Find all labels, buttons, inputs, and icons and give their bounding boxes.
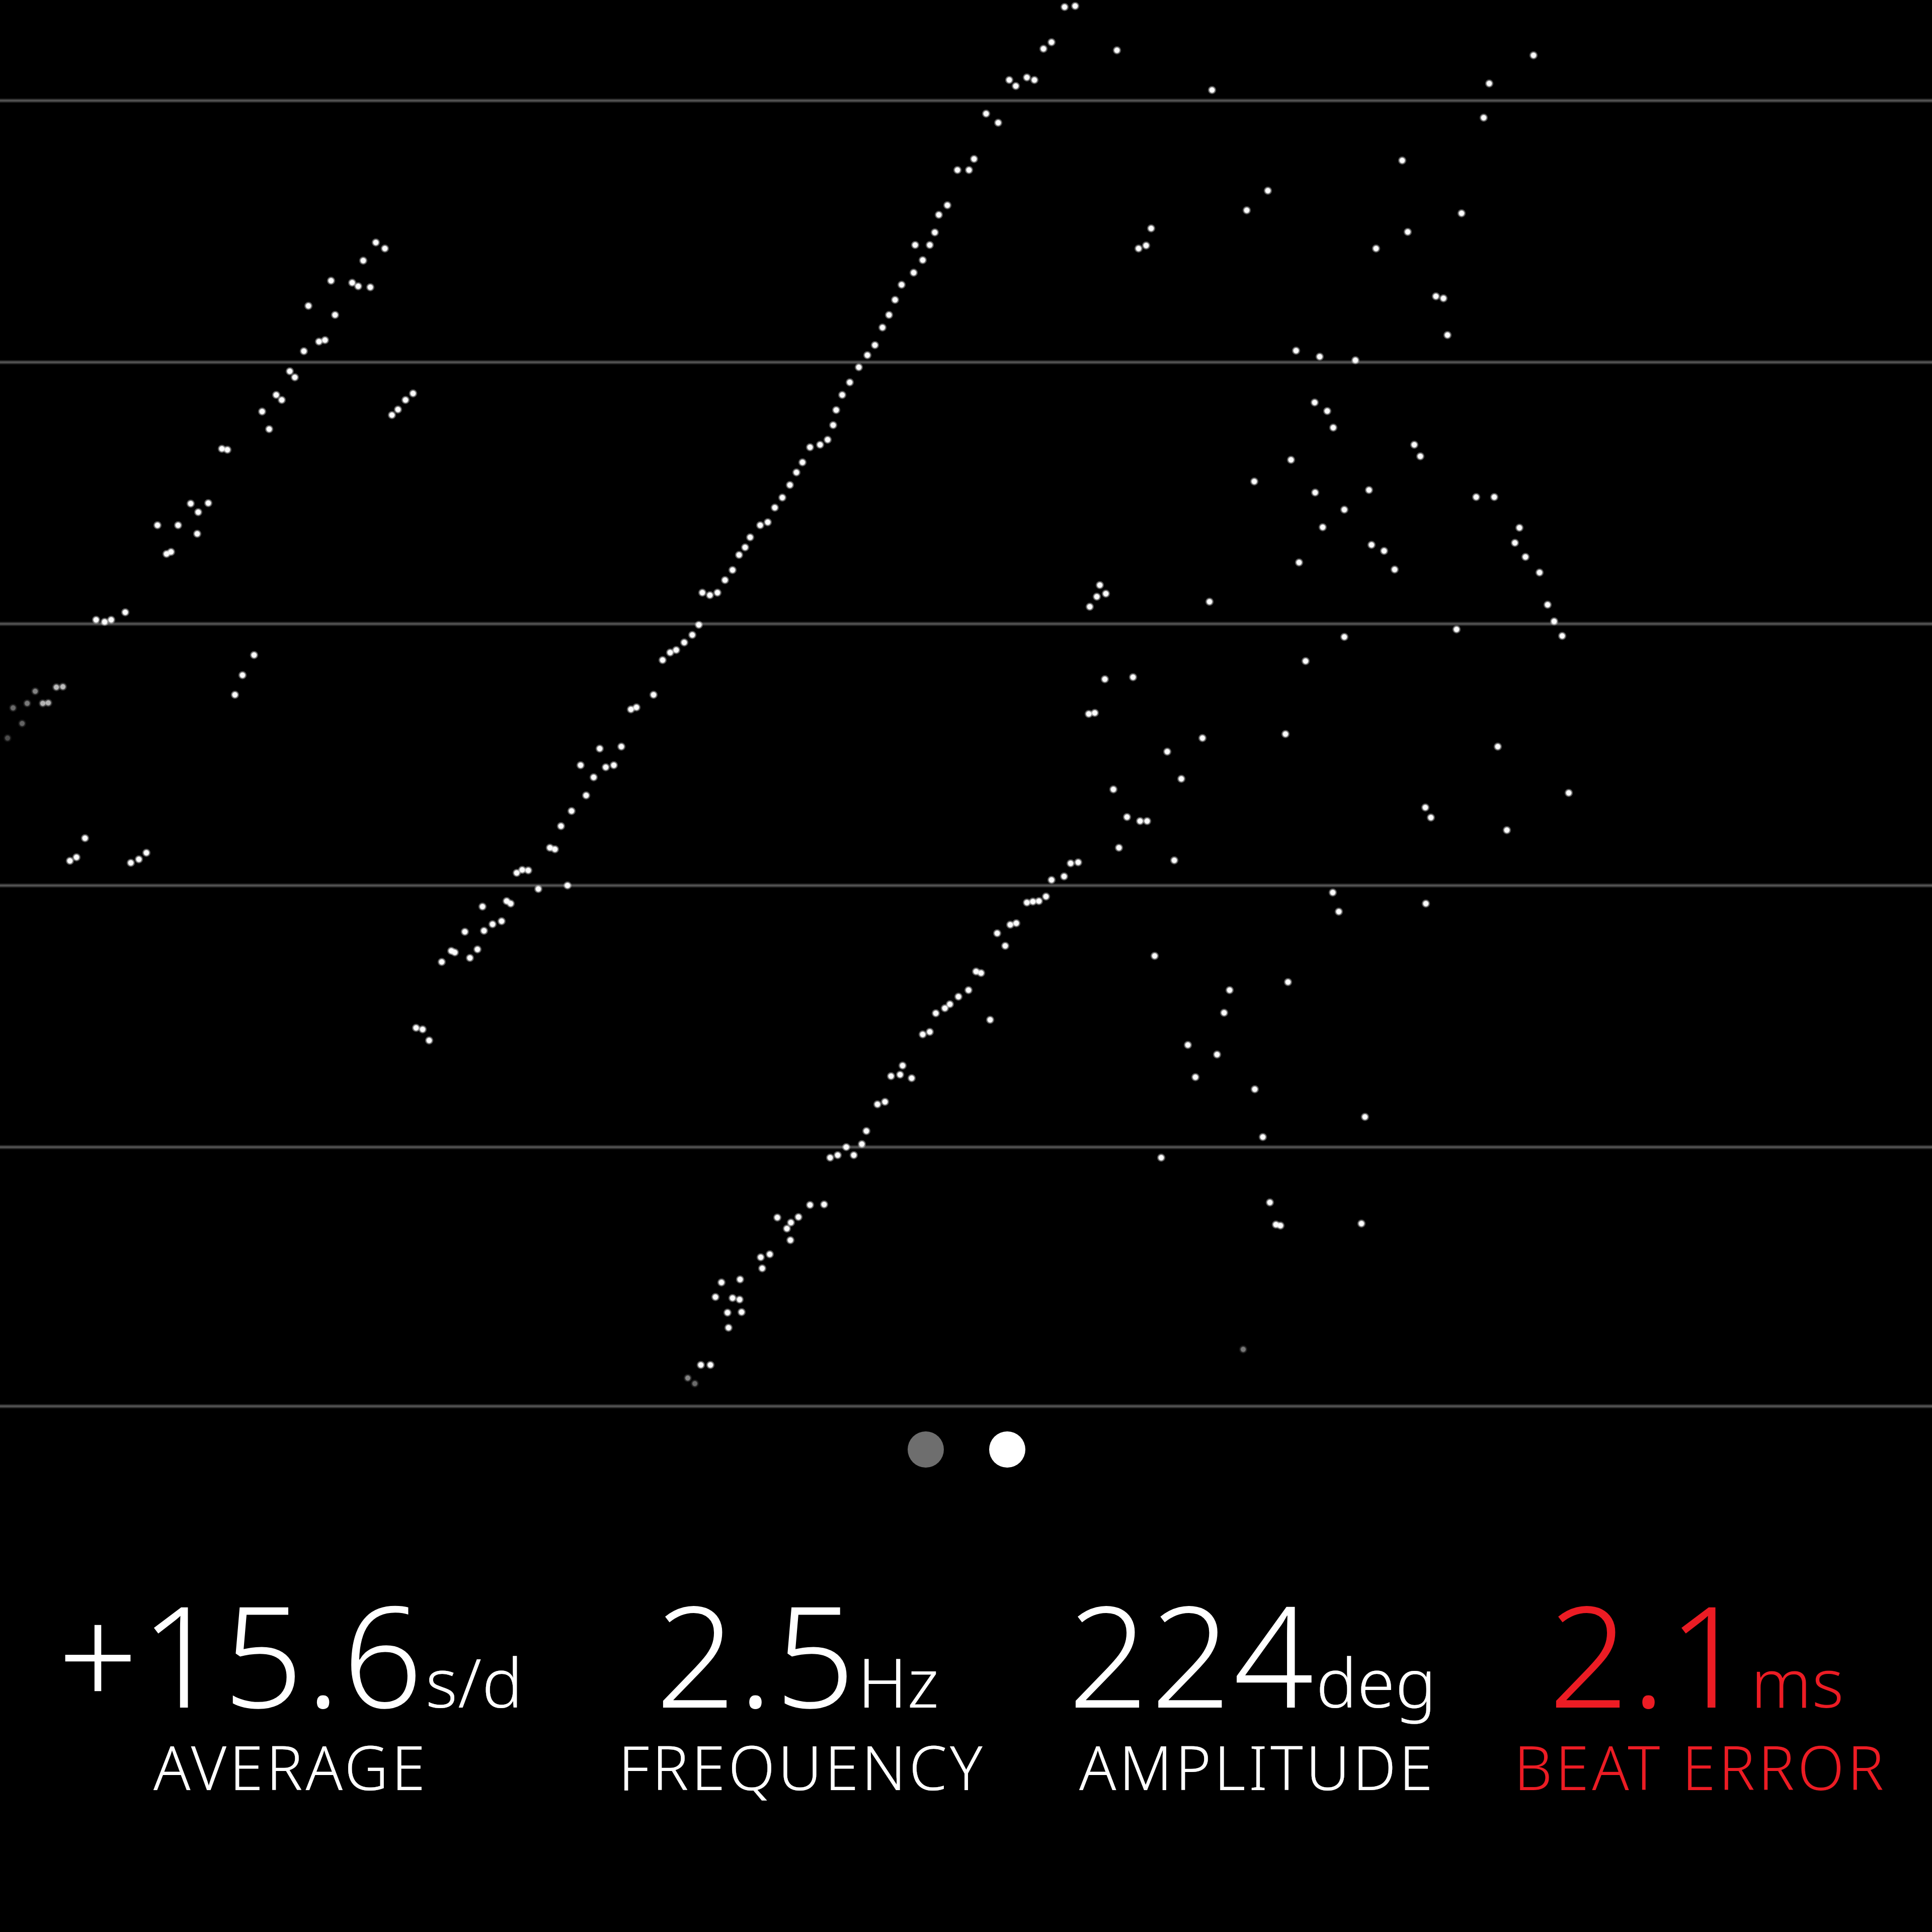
button[interactable]: Page 1 [908,1431,944,1468]
button[interactable]: 2.1 [1449,1530,1932,1932]
staticText: s/d [426,1635,523,1728]
staticText: 224 [1068,1558,1316,1749]
staticText: ms [1751,1635,1844,1728]
staticText: Hz [858,1635,940,1728]
button[interactable]: Page 2, selected [989,1431,1025,1468]
staticText: 2.1 [1549,1558,1751,1749]
button[interactable]: +15.6 [0,1530,483,1932]
staticText: BEAT ERROR [1514,1725,1887,1808]
button[interactable]: 2.5 [483,1530,966,1932]
staticText: AVERAGE [153,1725,429,1808]
button[interactable]: Rate trace graph [0,0,1932,1414]
staticText: AMPLITUDE [1079,1725,1436,1808]
staticText: deg [1316,1635,1437,1728]
button[interactable]: 224 [966,1530,1449,1932]
staticText: FREQUENCY [618,1725,986,1808]
staticText: +15.6 [58,1558,426,1749]
staticText: 2.5 [656,1558,858,1749]
